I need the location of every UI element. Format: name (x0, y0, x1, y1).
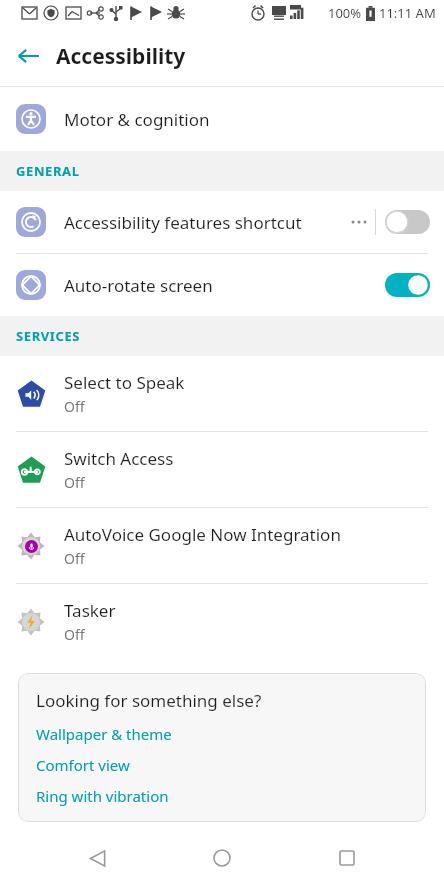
button[interactable]: Tasker (0, 584, 444, 659)
staticText: Ring with vibration (36, 786, 169, 806)
staticText: Motor & cognition (64, 108, 210, 131)
button[interactable]: Motor & cognition (0, 87, 444, 151)
staticText: GENERAL (16, 162, 80, 180)
staticText: 100% (328, 4, 362, 22)
button[interactable]: Comfort view (36, 755, 408, 775)
staticText: Tasker (64, 599, 116, 622)
button[interactable]: AutoVoice Google Now Integration (0, 508, 444, 583)
button[interactable]: On (384, 271, 430, 299)
staticText: Auto-rotate screen (64, 274, 384, 297)
staticText: Wallpaper & theme (36, 724, 172, 744)
button[interactable]: Auto-rotate screen (0, 254, 444, 316)
staticText: Switch Access (64, 447, 174, 470)
staticText: Off (64, 625, 85, 644)
button[interactable]: Home (194, 830, 250, 886)
staticText: Accessibility (56, 42, 186, 71)
staticText: Comfort view (36, 755, 130, 775)
staticText: Off (64, 473, 85, 492)
staticText: 11:11 AM (379, 4, 436, 22)
button[interactable]: Back (8, 36, 48, 76)
button[interactable]: Ring with vibration (36, 786, 408, 806)
button[interactable]: Off (384, 208, 430, 236)
staticText: AutoVoice Google Now Integration (64, 523, 341, 546)
button[interactable]: Select to Speak (0, 356, 444, 431)
button[interactable]: Recents (319, 830, 375, 886)
button[interactable]: Back (69, 830, 125, 886)
staticText: Select to Speak (64, 371, 185, 394)
staticText: Looking for something else? (36, 689, 262, 712)
staticText: Off (64, 397, 85, 416)
staticText: Off (64, 549, 85, 568)
button[interactable]: Accessibility features shortcut (0, 191, 444, 253)
staticText: SERVICES (16, 327, 81, 345)
button[interactable]: Switch Access (0, 432, 444, 507)
button[interactable]: Wallpaper & theme (36, 724, 408, 744)
staticText: Accessibility features shortcut (64, 211, 351, 234)
